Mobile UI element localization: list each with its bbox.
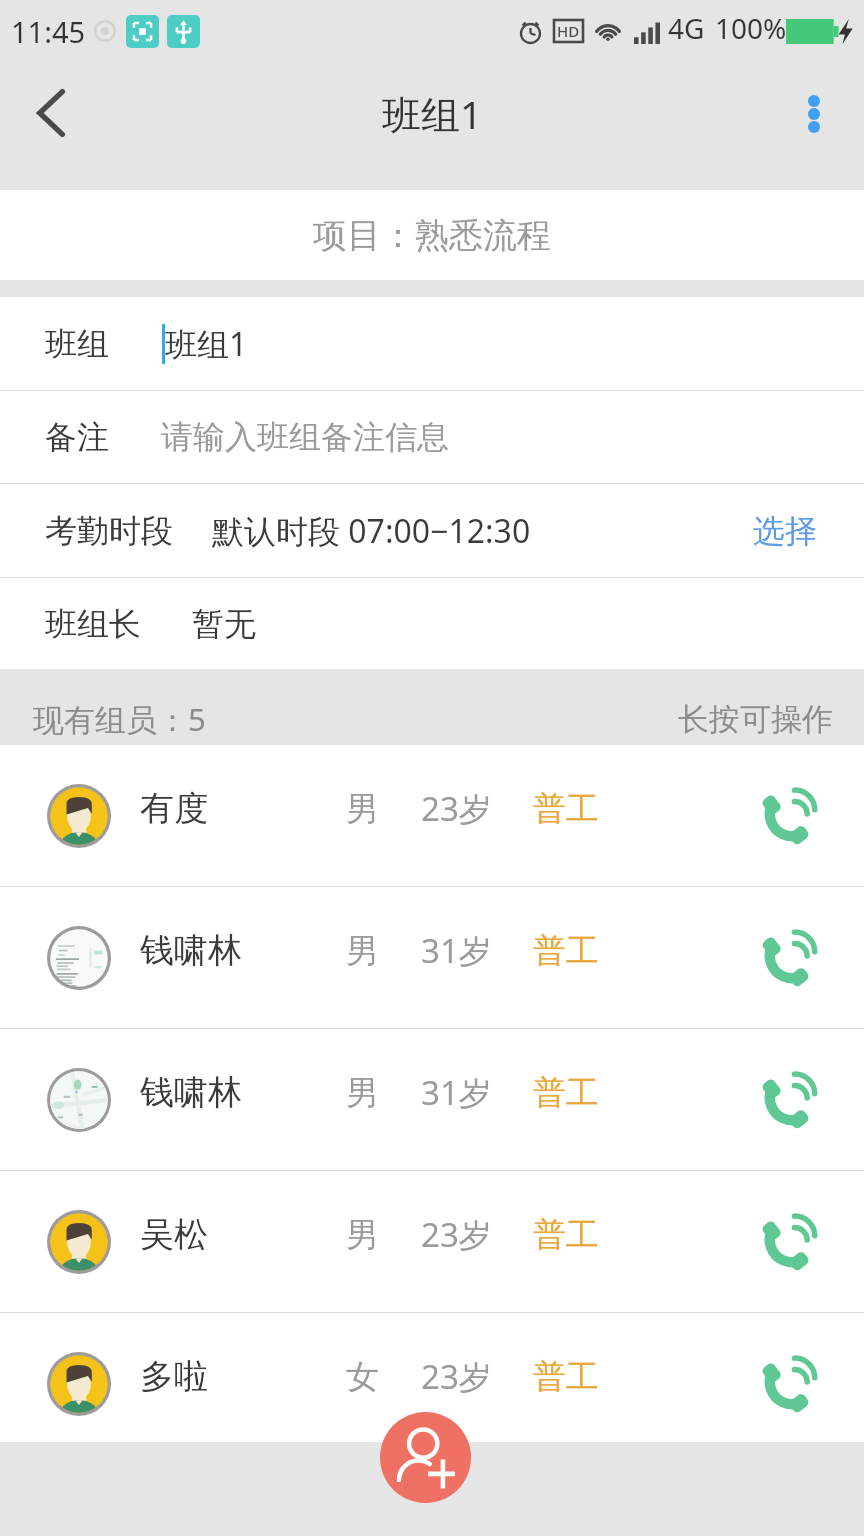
button[interactable]: 班组 [0, 297, 864, 390]
button[interactable]: 班组长 [0, 578, 864, 669]
staticText: 男 [346, 788, 379, 830]
button[interactable]: 钱啸林 [0, 887, 864, 1028]
staticText: 现有组员：5 [33, 698, 206, 740]
staticText: 考勤时段 [45, 511, 173, 551]
staticText: 默认时段 07:00−12:30 [212, 509, 531, 553]
staticText: 班组长 [45, 604, 141, 644]
staticText: 普工 [533, 788, 599, 830]
staticText: HD [557, 21, 580, 41]
button[interactable]: 更多选项 [764, 66, 864, 162]
staticText: 男 [346, 1214, 379, 1256]
staticText: 男 [346, 1072, 379, 1114]
staticText: 女 [346, 1356, 379, 1398]
button[interactable]: 多啦 [0, 1313, 864, 1454]
staticText: 备注 [45, 417, 109, 457]
staticText: 选择 [753, 511, 817, 551]
button[interactable]: 有度 [0, 745, 864, 886]
staticText: 普工 [533, 1072, 599, 1114]
staticText: 长按可操作 [678, 700, 833, 739]
button[interactable]: 添加组员 [380, 1412, 471, 1503]
staticText: 多啦 [140, 1355, 208, 1398]
button[interactable]: 钱啸林 [0, 1029, 864, 1170]
staticText: 100% [715, 9, 787, 47]
staticText: 吴松 [140, 1213, 208, 1256]
button[interactable]: 返回 [0, 65, 104, 161]
button[interactable]: 吴松 [0, 1171, 864, 1312]
staticText: 钱啸林 [140, 1071, 242, 1114]
staticText: 有度 [140, 787, 208, 830]
staticText: 4G [668, 9, 705, 47]
staticText: 31岁 [421, 928, 492, 973]
staticText: 23岁 [421, 786, 492, 831]
staticText: 普工 [533, 1356, 599, 1398]
button[interactable]: 拨打电话 [748, 1204, 826, 1282]
staticText: 请输入班组备注信息 [161, 417, 449, 457]
staticText: 普工 [533, 1214, 599, 1256]
staticText: 23岁 [421, 1354, 492, 1399]
button[interactable]: 备注 [0, 391, 864, 483]
button[interactable]: 拨打电话 [748, 920, 826, 998]
button[interactable]: 拨打电话 [748, 1346, 826, 1424]
staticText: 项目：熟悉流程 [313, 214, 551, 257]
staticText: 31岁 [421, 1070, 492, 1115]
staticText: 23岁 [421, 1212, 492, 1257]
staticText: 班组1 [382, 87, 483, 140]
staticText: 暂无 [192, 604, 256, 644]
staticText: 钱啸林 [140, 929, 242, 972]
staticText: 普工 [533, 930, 599, 972]
staticText: 班组1 [165, 322, 248, 366]
button[interactable]: 拨打电话 [748, 1062, 826, 1140]
staticText: 班组 [45, 324, 109, 364]
button[interactable]: 考勤时段 [0, 484, 864, 577]
button[interactable]: 拨打电话 [748, 778, 826, 856]
staticText: 11:45 [11, 12, 86, 51]
staticText: 男 [346, 930, 379, 972]
